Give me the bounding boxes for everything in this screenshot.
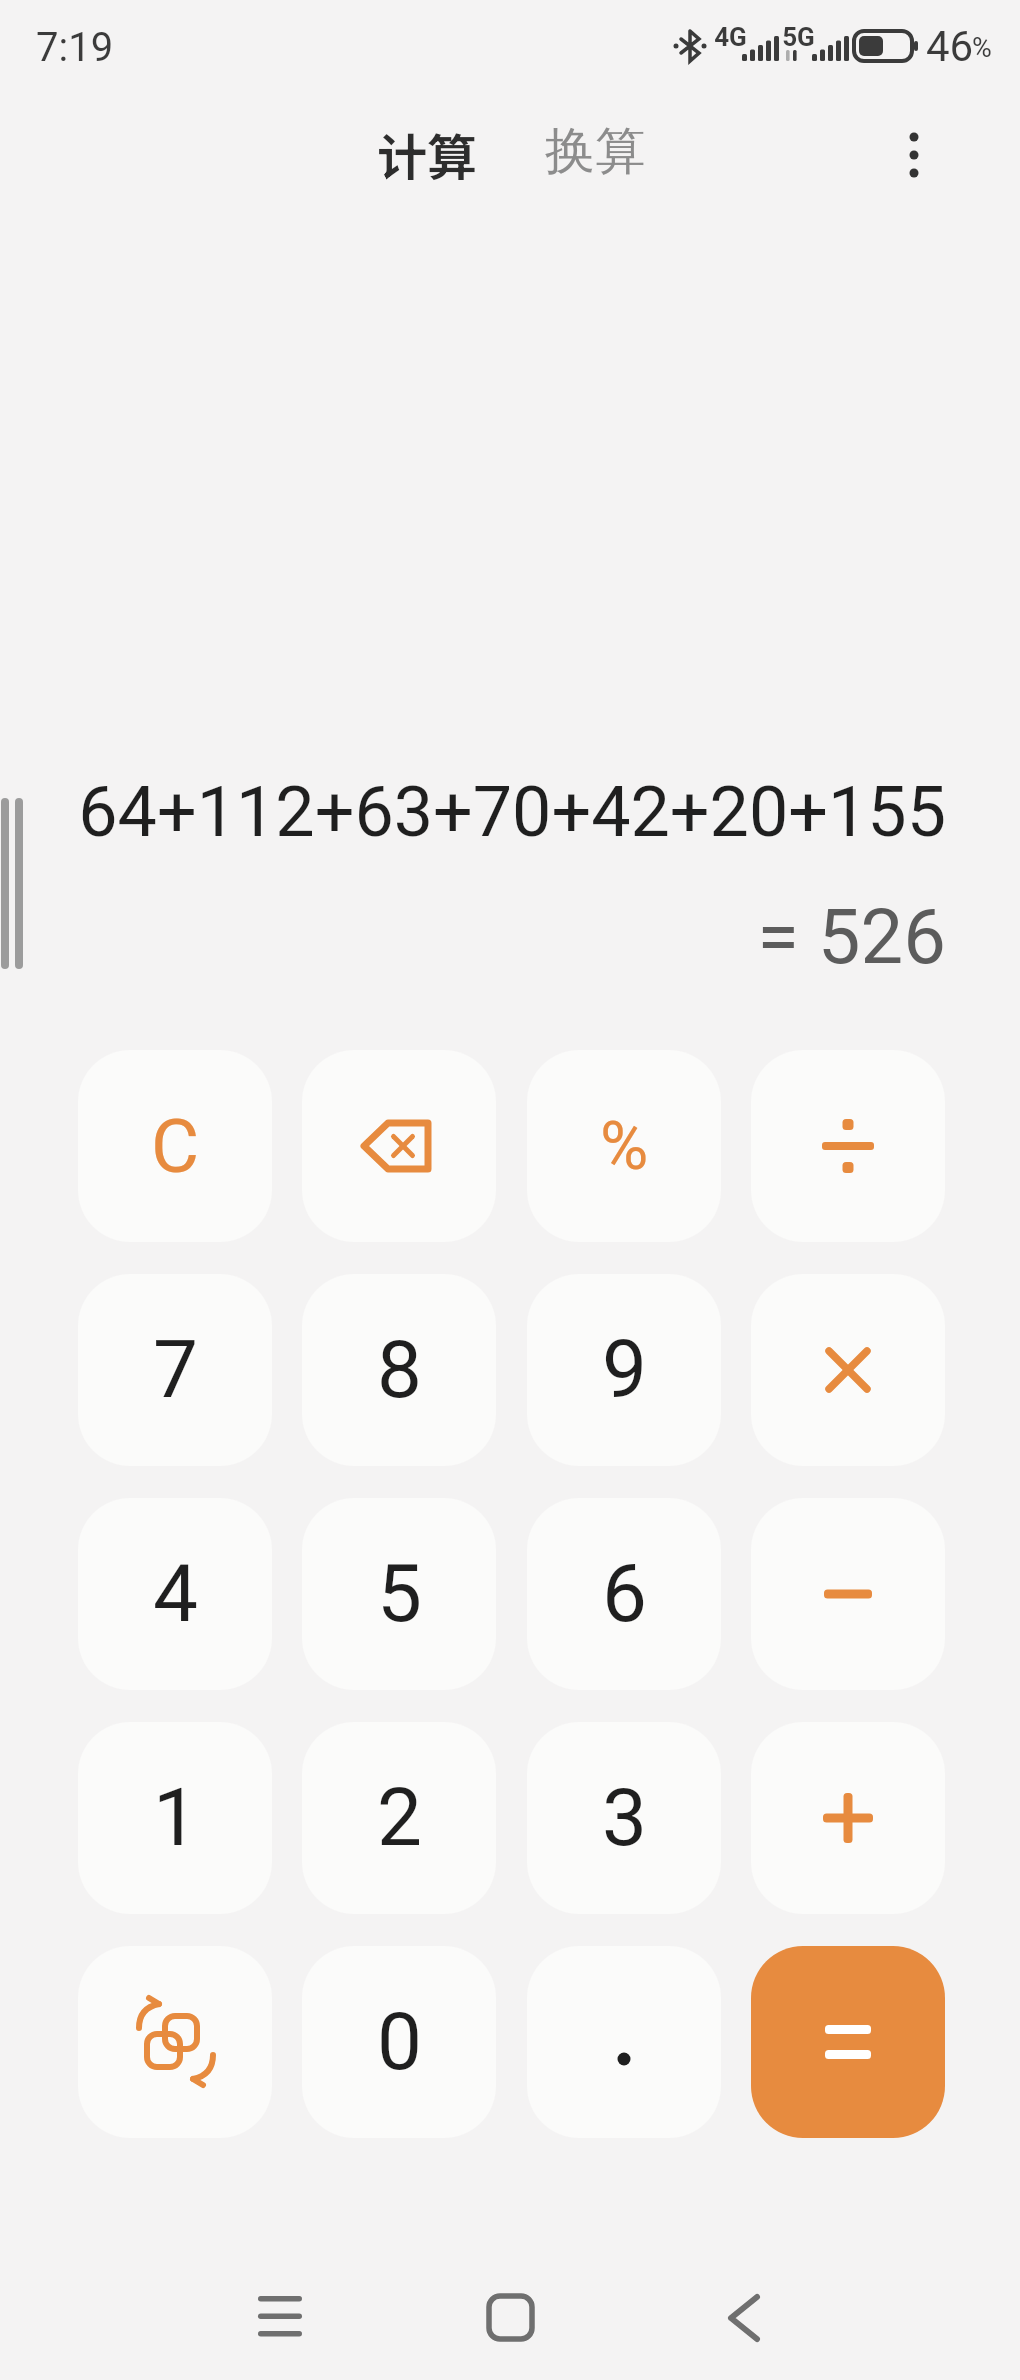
button[interactable] bbox=[884, 125, 944, 185]
button[interactable] bbox=[751, 1946, 945, 2138]
button[interactable]: 9 bbox=[527, 1274, 721, 1466]
button[interactable]: 6 bbox=[527, 1498, 721, 1690]
staticText: % bbox=[972, 32, 992, 64]
staticText: 1 bbox=[153, 1771, 198, 1865]
button[interactable]: 7 bbox=[78, 1274, 272, 1466]
staticText: 5 bbox=[377, 1547, 422, 1641]
button[interactable] bbox=[302, 1050, 496, 1242]
staticText: C bbox=[151, 1103, 200, 1190]
button[interactable] bbox=[751, 1274, 945, 1466]
button[interactable]: 5 bbox=[302, 1498, 496, 1690]
staticText: 46 bbox=[926, 22, 974, 66]
staticText: 7:19 bbox=[36, 24, 114, 68]
button[interactable]: 计算 bbox=[354, 118, 500, 184]
button[interactable]: 0 bbox=[302, 1946, 496, 2138]
staticText: 8 bbox=[377, 1323, 422, 1417]
button[interactable] bbox=[78, 1946, 272, 2138]
button[interactable] bbox=[470, 2280, 550, 2360]
staticText: 2 bbox=[377, 1771, 422, 1865]
staticText: 计算 bbox=[377, 118, 477, 184]
button[interactable]: C bbox=[78, 1050, 272, 1242]
button[interactable]: 2 bbox=[302, 1722, 496, 1914]
button[interactable] bbox=[751, 1050, 945, 1242]
button[interactable] bbox=[240, 2280, 320, 2360]
button[interactable] bbox=[527, 1946, 721, 2138]
staticText: 5G bbox=[782, 22, 815, 52]
staticText: 4G bbox=[714, 22, 747, 52]
button[interactable] bbox=[751, 1722, 945, 1914]
button[interactable] bbox=[700, 2280, 780, 2360]
button[interactable]: % bbox=[527, 1050, 721, 1242]
staticText: 4 bbox=[153, 1547, 198, 1641]
button[interactable]: 3 bbox=[527, 1722, 721, 1914]
button[interactable] bbox=[751, 1498, 945, 1690]
staticText: 7 bbox=[153, 1323, 198, 1417]
button[interactable]: 换算 bbox=[522, 118, 668, 184]
staticText: 64+112+63+70+42+20+155 bbox=[78, 771, 946, 853]
button[interactable]: 1 bbox=[78, 1722, 272, 1914]
staticText: % bbox=[600, 1108, 649, 1185]
staticText: 3 bbox=[602, 1771, 647, 1865]
staticText: 6 bbox=[602, 1547, 647, 1641]
staticText: 0 bbox=[377, 1995, 422, 2089]
button[interactable]: 8 bbox=[302, 1274, 496, 1466]
staticText: = 526 bbox=[757, 892, 946, 972]
staticText: 换算 bbox=[545, 120, 645, 183]
staticText: 9 bbox=[602, 1323, 647, 1417]
button[interactable]: 4 bbox=[78, 1498, 272, 1690]
